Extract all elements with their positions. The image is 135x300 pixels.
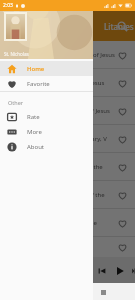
button[interactable]: Favorite — [117, 190, 127, 200]
staticText: Litany of the Sacred Heart of Jesus — [8, 79, 117, 87]
button[interactable]: Home — [0, 61, 93, 76]
button[interactable]: Litany of the Most Holy Name of Jesus — [0, 41, 135, 68]
button[interactable]: Next — [132, 265, 135, 276]
staticText: 2:03 — [3, 2, 13, 9]
staticText: Other — [8, 99, 24, 106]
button[interactable]: Litany of Humility, prayer of the — [0, 209, 135, 236]
staticText: About — [27, 143, 45, 151]
staticText: Home — [27, 65, 45, 73]
button[interactable]: Previous — [96, 265, 107, 276]
button[interactable]: Favorite — [117, 162, 127, 172]
staticText: Rate — [27, 113, 40, 121]
staticText: Litany of the Saints, patrons of the — [8, 191, 117, 199]
button[interactable]: Favorite — [117, 218, 127, 228]
button[interactable]: About — [0, 139, 93, 154]
staticText: Litany of the Precious Blood of Jesus — [8, 107, 117, 115]
button[interactable]: Favorite — [117, 78, 127, 88]
button[interactable]: Litany of the Precious Blood of Jesus — [0, 97, 135, 124]
button[interactable]: Play — [113, 264, 126, 277]
staticText: Litany of the Holy Spirit of the — [8, 243, 117, 251]
button[interactable]: Litany of the Holy Spirit of the — [0, 237, 135, 257]
button[interactable]: Favorite — [117, 242, 127, 252]
staticText: Favorite — [27, 80, 50, 88]
staticText: Litanies — [104, 21, 134, 32]
button[interactable]: Recents — [97, 286, 109, 298]
staticText: More — [27, 128, 42, 136]
button[interactable]: Favorite — [0, 76, 93, 91]
button[interactable]: Favorite — [117, 134, 127, 144]
button[interactable]: Litany of the Saints, patrons of the — [0, 181, 135, 208]
staticText: Litany of St. Joseph, spouse of the — [8, 163, 117, 171]
staticText: Litany of Humility, prayer of the — [8, 219, 117, 227]
staticText: St. Nicholas — [4, 51, 29, 57]
button[interactable]: Litany of St. Joseph, spouse of the — [0, 153, 135, 180]
button[interactable]: Litany of the Blessed Virgin Mary, V — [0, 125, 135, 152]
staticText: Litany of the Blessed Virgin Mary, V — [8, 135, 117, 143]
staticText: Litany of the Most Holy Name of Jesus — [8, 51, 117, 59]
button[interactable]: Rate — [0, 109, 93, 124]
button[interactable]: Search — [115, 19, 129, 33]
button[interactable]: Litany of the Sacred Heart of Jesus — [0, 69, 135, 96]
button[interactable]: Favorite — [117, 50, 127, 60]
button[interactable]: Favorite — [117, 106, 127, 116]
button[interactable]: More — [0, 124, 93, 139]
